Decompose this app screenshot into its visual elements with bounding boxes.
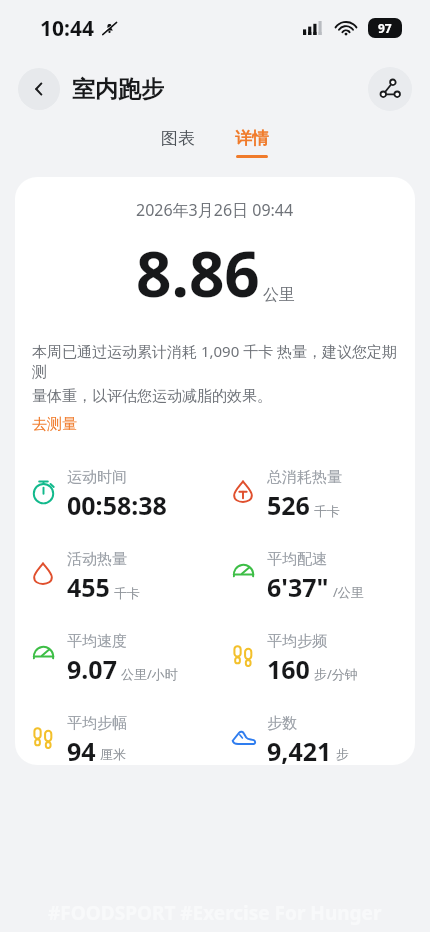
staticText: 526 [267,488,310,522]
button[interactable]: 总消耗热量 [215,468,415,522]
button[interactable]: 平均步幅 [15,714,215,765]
staticText: 平均步幅 [67,714,127,733]
staticText: 8.86 [136,231,260,315]
staticText: 6'37" [267,570,329,604]
staticText: 室内跑步 [72,75,164,104]
button[interactable]: 详情 [221,122,283,164]
staticText: 厘米 [100,746,126,762]
button[interactable]: 活动热量 [15,550,215,604]
staticText: 00:58:38 [67,488,167,522]
staticText: 运动时间 [67,468,127,487]
staticText: 公里/小时 [121,665,178,683]
button[interactable]: 平均速度 [15,632,215,686]
staticText: 千卡 [114,585,140,601]
staticText: 平均速度 [67,632,127,651]
staticText: 9,421 [267,734,332,765]
staticText: 千卡 [314,503,340,519]
staticText: 图表 [161,128,195,149]
staticText: 步/分钟 [314,665,358,683]
staticText: 总消耗热量 [267,468,342,487]
button[interactable]: 平均步频 [215,632,415,686]
button[interactable]: 去测量 [32,415,77,434]
staticText: 活动热量 [67,550,127,569]
staticText: 步数 [267,714,297,733]
button[interactable]: 平均配速 [215,550,415,604]
staticText: /公里 [333,583,364,601]
button[interactable]: 运动时间 [15,468,215,522]
staticText: 160 [267,652,310,686]
staticText: 9.07 [67,652,117,686]
staticText: 平均配速 [267,550,327,569]
staticText: 步 [336,746,349,762]
staticText: 公里 [263,285,295,305]
staticText: 2026年3月26日 09:44 [136,199,294,221]
staticText: 量体重，以评估您运动减脂的效果。 [32,387,272,406]
staticText: 详情 [235,128,269,149]
staticText: 平均步频 [267,632,327,651]
button[interactable]: 步数 [215,714,415,765]
button[interactable]: Back [18,68,60,110]
staticText: 本周已通过运动累计消耗 1,090 千卡 热量，建议您定期测 [32,341,401,382]
staticText: 97 [378,20,392,36]
staticText: 455 [67,570,110,604]
staticText: 94 [67,734,96,765]
button[interactable]: 图表 [147,122,209,155]
staticText: 10:44 [40,14,94,43]
staticText: 去测量 [32,415,77,434]
button[interactable]: Share [368,67,412,111]
